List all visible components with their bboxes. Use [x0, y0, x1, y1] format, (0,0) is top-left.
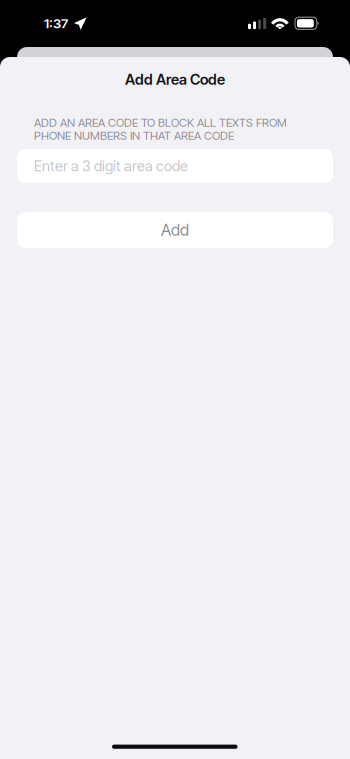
button[interactable]: Add — [17, 212, 333, 248]
staticText: Add Area Code — [125, 71, 225, 88]
staticText: PHONE NUMBERS IN THAT AREA CODE — [34, 129, 234, 142]
staticText: Enter a 3 digit area code — [34, 157, 188, 175]
staticText: 1:37 — [44, 15, 68, 31]
button[interactable]: Enter a 3 digit area code — [17, 149, 333, 183]
staticText: Add — [161, 220, 189, 240]
staticText: ADD AN AREA CODE TO BLOCK ALL TEXTS FROM — [34, 116, 287, 129]
